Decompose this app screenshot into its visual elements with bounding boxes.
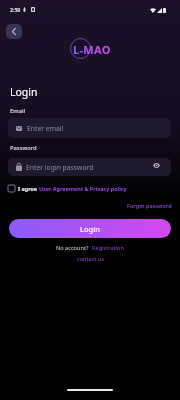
button[interactable]: Enter login password: [8, 158, 171, 176]
staticText: No account?: [56, 244, 89, 252]
button[interactable]: Show password: [153, 163, 160, 168]
staticText: I agree: [18, 185, 37, 192]
button[interactable]: Login: [9, 219, 171, 238]
button[interactable]: contact us: [77, 255, 104, 263]
button[interactable]: Enter email: [8, 118, 171, 138]
staticText: Enter login password: [26, 163, 94, 172]
staticText: Password: [10, 144, 37, 152]
button[interactable]: I agree: [7, 183, 128, 194]
button[interactable]: Back: [6, 24, 22, 39]
staticText: L-MAO: [73, 42, 111, 57]
staticText: 2:59: [10, 6, 21, 13]
staticText: Email: [10, 107, 26, 115]
staticText: User Agreement & Privacy policy: [39, 185, 127, 192]
button[interactable]: Registration: [92, 244, 124, 252]
staticText: Login: [10, 85, 38, 99]
button[interactable]: Forget password: [127, 202, 172, 210]
staticText: Login: [80, 224, 100, 234]
staticText: Enter email: [27, 124, 64, 133]
